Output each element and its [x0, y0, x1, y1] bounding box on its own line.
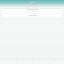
button[interactable]: Profile: [48, 62, 50, 64]
button[interactable]: [2, 14, 62, 17]
button[interactable]: Home: [15, 62, 17, 64]
button[interactable]: Profile image: [28, 1, 36, 7]
button[interactable]: [2, 8, 62, 13]
button[interactable]: Search: [31, 62, 33, 64]
